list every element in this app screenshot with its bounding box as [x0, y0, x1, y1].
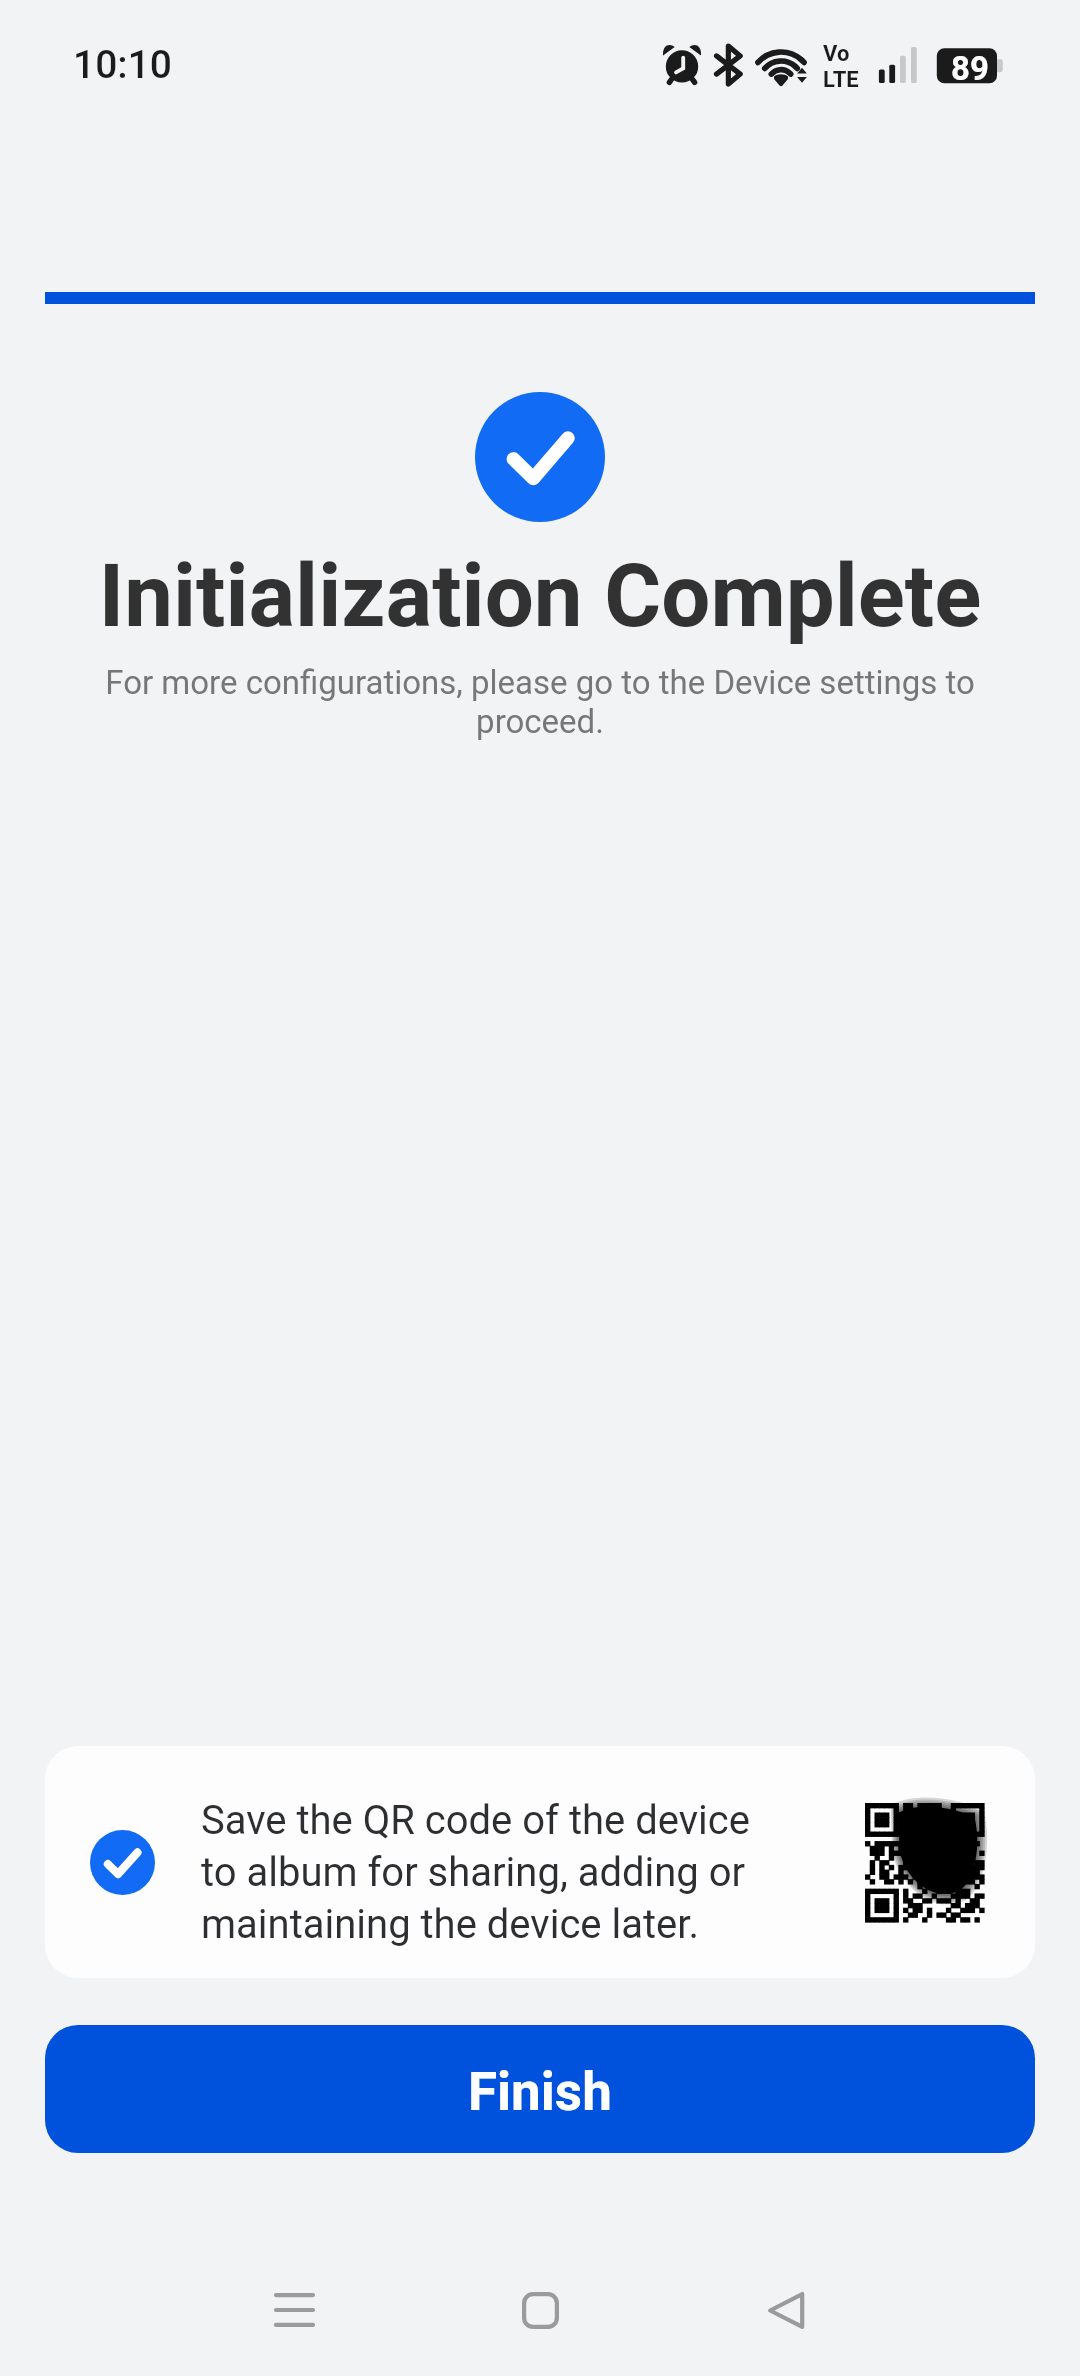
button[interactable]: Save the QR code of the device to album …	[45, 1746, 1035, 1978]
staticText: LTE	[823, 67, 859, 93]
staticText: Save the QR code of the device to album …	[201, 1797, 761, 1948]
staticText: Initialization Complete	[0, 545, 1080, 647]
staticText: For more configurations, please go to th…	[90, 663, 990, 741]
staticText: Finish	[468, 2061, 612, 2123]
staticText: 10:10	[73, 42, 173, 88]
button[interactable]: Recent apps	[234, 2250, 354, 2370]
button[interactable]: Back	[726, 2250, 846, 2370]
button[interactable]: Home	[480, 2250, 600, 2370]
staticText: Vo	[823, 41, 850, 67]
button[interactable]: Finish	[45, 2025, 1035, 2153]
staticText: 89	[951, 49, 989, 88]
